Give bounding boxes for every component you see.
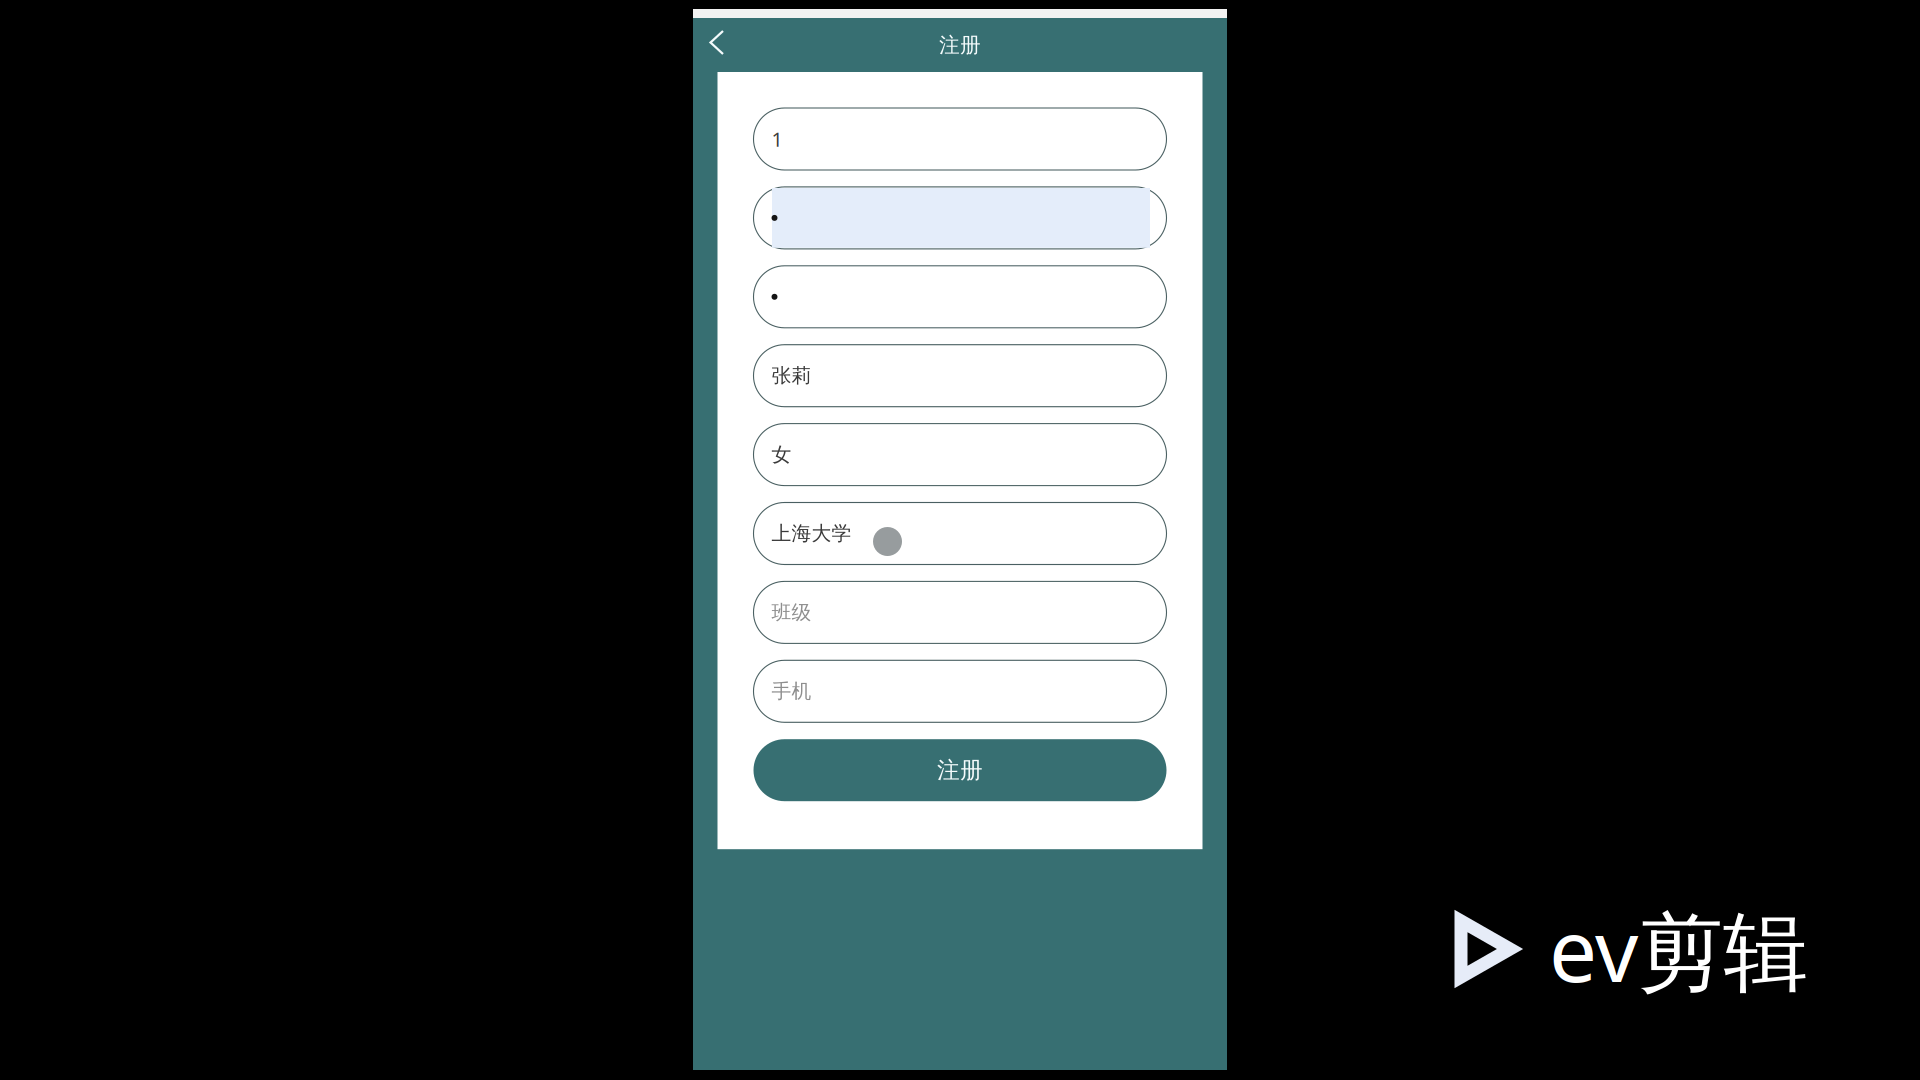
staticText: 1 <box>771 126 782 152</box>
button[interactable]: 手机 <box>753 660 1166 722</box>
button[interactable]: 性别 <box>753 424 1166 486</box>
button[interactable]: Back <box>703 22 737 68</box>
staticText: 上海大学 <box>771 521 851 546</box>
button[interactable]: 学号 <box>753 108 1166 170</box>
button[interactable]: 姓名 <box>753 345 1166 407</box>
staticText: 张莉 <box>771 363 811 388</box>
staticText: 注册 <box>937 756 983 784</box>
button[interactable]: 班级 <box>753 581 1166 643</box>
button[interactable]: 学校 <box>753 502 1166 564</box>
button[interactable]: 密码 <box>753 187 1166 249</box>
staticText: 班级 <box>771 600 811 625</box>
staticText: 手机 <box>771 679 811 704</box>
staticText: ev剪辑 <box>1549 891 1808 1007</box>
button[interactable]: 确认密码 <box>753 266 1166 328</box>
staticText: 女 <box>771 442 791 467</box>
staticText: 注册 <box>939 32 981 58</box>
button[interactable]: 注册 <box>753 739 1166 801</box>
